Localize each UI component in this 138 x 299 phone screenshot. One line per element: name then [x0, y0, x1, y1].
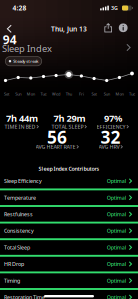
staticText: Optimal: [107, 194, 126, 201]
staticText: HR Drop: [4, 260, 24, 268]
button[interactable]: Back: [3, 21, 15, 36]
staticText: Sleep Index Contributors: [38, 165, 99, 172]
staticText: Sat: [92, 91, 97, 97]
button[interactable]: 97%: [90, 112, 136, 130]
staticText: Restoration Time: [4, 294, 45, 299]
staticText: TIME IN BED: [5, 123, 36, 130]
staticText: Steady streak: [13, 58, 38, 64]
staticText: 32: [100, 126, 120, 149]
staticText: Mon: [27, 91, 35, 97]
staticText: Total Sleep: [4, 244, 30, 251]
staticText: Tue: [40, 91, 46, 97]
staticText: 3G: [111, 4, 118, 12]
staticText: AVG HEART RATE: [36, 143, 76, 150]
staticText: Sun: [15, 91, 21, 97]
staticText: TOTAL SLEEP: [52, 123, 84, 130]
button[interactable]: Restoration Time: [0, 291, 138, 299]
staticText: 7h 44m: [6, 112, 38, 124]
staticText: Thu: [66, 91, 72, 97]
staticText: Sleep Index: [2, 42, 52, 54]
button[interactable]: Total Sleep: [0, 241, 138, 254]
staticText: Consistency: [4, 227, 34, 234]
staticText: Thu, Jun 13: [51, 24, 87, 33]
staticText: 56: [47, 126, 67, 149]
staticText: Optimal: [107, 177, 126, 185]
button[interactable]: 56: [30, 126, 84, 148]
staticText: Optimal: [107, 294, 126, 299]
staticText: Restfulness: [4, 211, 33, 218]
button[interactable]: Sleep Efficiency: [0, 174, 138, 187]
staticText: Wed: [52, 91, 60, 97]
staticText: Tue: [129, 91, 135, 97]
button[interactable]: Share: [102, 21, 115, 35]
staticText: 97%: [104, 112, 122, 124]
staticText: Fri: [79, 91, 84, 97]
staticText: Sleep Efficiency: [4, 177, 42, 185]
staticText: 4:28: [12, 3, 26, 12]
staticText: Optimal: [107, 244, 126, 251]
button[interactable]: 32: [83, 126, 137, 148]
button[interactable]: Info: [116, 20, 131, 35]
staticText: Timing: [4, 277, 20, 284]
button[interactable]: Timing: [0, 274, 138, 287]
staticText: Temperature: [4, 194, 36, 201]
staticText: Optimal: [107, 227, 126, 234]
staticText: Optimal: [107, 277, 126, 284]
button[interactable]: 7h 29m: [46, 112, 92, 130]
staticText: Sat: [4, 91, 9, 97]
button[interactable]: Steady streak: [5, 57, 42, 66]
button[interactable]: Consistency: [0, 224, 138, 237]
button[interactable]: 7h 44m: [0, 112, 45, 130]
staticText: 94: [3, 32, 17, 47]
staticText: Sun: [104, 91, 110, 97]
button[interactable]: Restfulness: [0, 208, 138, 221]
staticText: Mon: [115, 91, 123, 97]
staticText: 7h 29m: [53, 112, 85, 124]
staticText: Optimal: [107, 211, 126, 218]
button[interactable]: HR Drop: [0, 257, 138, 270]
staticText: EFFICIENCY: [97, 123, 126, 130]
staticText: Optimal: [107, 260, 126, 268]
staticText: AVG HRV: [99, 143, 120, 150]
button[interactable]: Temperature: [0, 191, 138, 204]
